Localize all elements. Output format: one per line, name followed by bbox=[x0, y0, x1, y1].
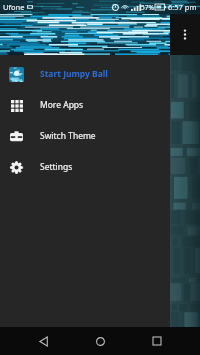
button[interactable]: Back bbox=[29, 327, 57, 355]
staticText: Settings bbox=[40, 161, 73, 173]
staticText: 57% bbox=[141, 3, 154, 12]
button[interactable]: Switch Theme bbox=[0, 122, 170, 150]
button[interactable]: More options bbox=[170, 14, 200, 55]
staticText: Switch Theme bbox=[40, 130, 96, 142]
staticText: 6:57 pm bbox=[168, 2, 197, 12]
button[interactable]: Recent apps bbox=[143, 327, 171, 355]
staticText: Ufone bbox=[3, 2, 25, 12]
staticText: Start Jumpy Ball bbox=[40, 68, 108, 80]
button[interactable]: Settings bbox=[0, 153, 170, 181]
button[interactable]: More Apps bbox=[0, 91, 170, 119]
button[interactable]: Home bbox=[86, 327, 114, 355]
staticText: More Apps bbox=[40, 99, 84, 111]
button[interactable]: Start Jumpy Ball bbox=[0, 60, 170, 88]
